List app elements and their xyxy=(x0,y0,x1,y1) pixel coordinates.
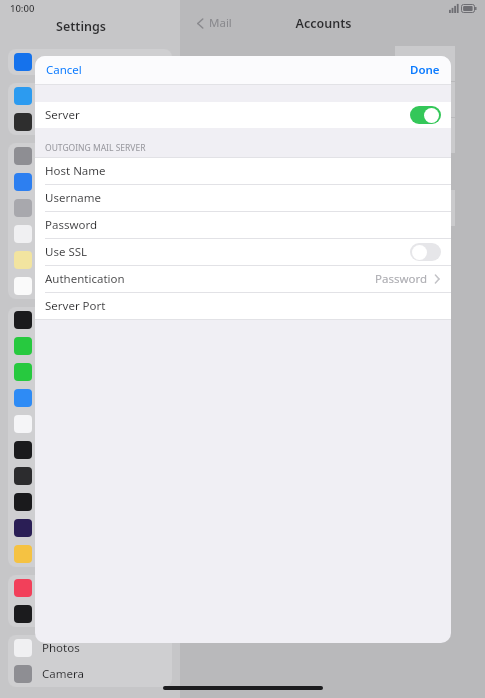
staticText: Server Port xyxy=(45,298,106,314)
button[interactable]: Off xyxy=(410,243,441,261)
button[interactable] xyxy=(8,541,172,567)
staticText: Password xyxy=(375,271,428,287)
button[interactable] xyxy=(8,411,172,437)
button[interactable]: Username xyxy=(35,185,451,211)
staticText: Mail xyxy=(209,15,232,31)
button[interactable]: Password xyxy=(35,212,451,238)
staticText: Settings xyxy=(0,18,162,35)
button[interactable] xyxy=(8,385,172,411)
button[interactable]: Authentication xyxy=(35,266,451,292)
staticText: 10:00 xyxy=(10,2,35,15)
staticText: Password xyxy=(45,217,98,233)
button[interactable] xyxy=(8,221,172,247)
button[interactable] xyxy=(8,273,172,299)
button[interactable] xyxy=(8,515,172,541)
button[interactable]: Server xyxy=(35,102,451,128)
button[interactable] xyxy=(8,83,172,109)
button[interactable]: Use SSL xyxy=(35,239,451,265)
staticText: Username xyxy=(45,190,101,206)
staticText: Host Name xyxy=(45,163,106,179)
button[interactable]: Done xyxy=(410,62,440,78)
button[interactable] xyxy=(8,463,172,489)
button[interactable]: Camera xyxy=(8,661,172,687)
button[interactable] xyxy=(8,359,172,385)
button[interactable] xyxy=(8,49,172,75)
staticText: Server xyxy=(45,107,80,123)
button[interactable] xyxy=(8,575,172,601)
staticText: Use SSL xyxy=(45,244,88,260)
staticText: Camera xyxy=(42,666,84,682)
button[interactable] xyxy=(8,169,172,195)
button[interactable]: Mail xyxy=(196,15,232,31)
button[interactable]: On xyxy=(410,106,441,124)
button[interactable] xyxy=(8,247,172,273)
staticText: OUTGOING MAIL SERVER xyxy=(45,142,146,154)
staticText: Photos xyxy=(42,640,80,656)
staticText: Done xyxy=(410,62,440,78)
button[interactable]: Cancel xyxy=(46,62,82,78)
button[interactable] xyxy=(8,489,172,515)
button[interactable]: Host Name xyxy=(35,158,451,184)
button[interactable]: Photos xyxy=(8,635,172,661)
staticText: Accounts xyxy=(232,15,415,32)
button[interactable] xyxy=(8,333,172,359)
button[interactable]: Server Port xyxy=(35,293,451,319)
button[interactable] xyxy=(8,437,172,463)
button[interactable] xyxy=(8,195,172,221)
button[interactable] xyxy=(8,307,172,333)
button[interactable] xyxy=(8,109,172,135)
staticText: Cancel xyxy=(46,62,82,78)
button[interactable] xyxy=(8,601,172,627)
button[interactable] xyxy=(8,143,172,169)
staticText: Authentication xyxy=(45,271,125,287)
